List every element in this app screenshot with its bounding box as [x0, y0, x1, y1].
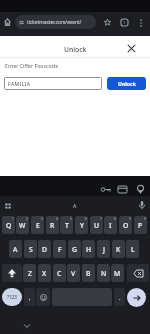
button[interactable] — [127, 288, 146, 307]
button[interactable]: S — [24, 240, 37, 258]
staticText: ?123 — [7, 294, 17, 300]
button[interactable] — [137, 185, 144, 194]
staticText: 8 — [114, 217, 116, 221]
button[interactable] — [104, 19, 111, 26]
staticText: K — [116, 245, 121, 254]
staticText: F — [58, 245, 62, 254]
button[interactable] — [23, 323, 31, 329]
button[interactable] — [2, 264, 22, 282]
staticText: 9 — [129, 217, 131, 221]
staticText: M — [114, 269, 121, 278]
staticText: T — [65, 221, 69, 230]
staticText: D — [42, 245, 47, 254]
staticText: . — [119, 294, 121, 301]
button[interactable]: W — [16, 216, 29, 234]
staticText: 4 — [56, 217, 58, 221]
staticText: A — [13, 245, 18, 254]
staticText: 6 — [85, 217, 87, 221]
button[interactable] — [139, 201, 145, 210]
button[interactable]: V — [67, 264, 80, 282]
button[interactable]: . — [114, 288, 125, 306]
button[interactable] — [127, 44, 136, 53]
button[interactable] — [4, 18, 11, 26]
button[interactable]: , — [24, 288, 35, 306]
button[interactable]: H — [82, 240, 95, 258]
staticText: J — [103, 245, 105, 254]
button[interactable] — [4, 202, 12, 210]
staticText: V — [71, 269, 76, 278]
staticText: Enter Offer Passcode — [5, 62, 59, 69]
staticText: P — [138, 221, 143, 230]
button[interactable] — [139, 19, 143, 27]
button[interactable]: C — [53, 264, 66, 282]
button[interactable]: E — [31, 216, 44, 234]
button[interactable]: X — [38, 264, 51, 282]
staticText: G — [72, 245, 77, 254]
staticText: B — [86, 269, 91, 278]
button[interactable]: T — [60, 216, 73, 234]
button[interactable]: Z — [23, 264, 36, 282]
staticText: 3 — [41, 217, 43, 221]
staticText: 7 — [100, 217, 102, 221]
button[interactable]: 1 — [121, 19, 128, 26]
staticText: N — [101, 269, 107, 278]
button[interactable]: ticketmaster.com/event/ — [15, 15, 96, 29]
staticText: H — [86, 245, 92, 254]
staticText: U — [94, 221, 100, 230]
staticText: Unlock — [118, 80, 136, 87]
staticText: O — [123, 221, 129, 230]
button[interactable]: ?123 — [2, 288, 22, 306]
staticText: R — [50, 221, 55, 230]
button[interactable]: F — [53, 240, 66, 258]
button[interactable]: J — [97, 240, 110, 258]
staticText: W — [19, 221, 26, 230]
button[interactable]: R — [46, 216, 59, 234]
staticText: I — [109, 221, 112, 230]
staticText: , — [29, 294, 31, 301]
staticText: Q — [6, 221, 12, 230]
button[interactable]: Q — [2, 216, 15, 234]
button[interactable] — [127, 264, 149, 282]
staticText: 2 — [26, 217, 28, 221]
button[interactable]: M — [111, 264, 124, 282]
button[interactable]: L — [126, 240, 139, 258]
button[interactable]: A — [9, 240, 22, 258]
button[interactable] — [101, 186, 111, 193]
staticText: X — [42, 269, 47, 278]
button[interactable]: K — [112, 240, 125, 258]
staticText: ticketmaster.com/event/ — [27, 19, 82, 26]
staticText: 1 — [12, 217, 14, 221]
button[interactable]: D — [38, 240, 51, 258]
staticText: C — [57, 269, 62, 278]
staticText: FAMILIA — [8, 80, 31, 87]
staticText: E — [36, 221, 40, 230]
staticText: Unlock — [64, 45, 87, 54]
staticText: 1 — [123, 20, 126, 25]
staticText: Y — [80, 221, 84, 230]
button[interactable] — [118, 186, 127, 193]
button[interactable]: B — [82, 264, 95, 282]
staticText: 0 — [144, 217, 146, 221]
staticText: S — [29, 245, 33, 254]
button[interactable]: Unlock — [107, 77, 146, 90]
staticText: L — [131, 245, 135, 254]
button[interactable]: O — [119, 216, 132, 234]
button[interactable]: U — [90, 216, 103, 234]
button[interactable]: FAMILIA — [4, 77, 102, 90]
button[interactable] — [36, 288, 50, 306]
button[interactable]: N — [97, 264, 110, 282]
staticText: A — [73, 202, 77, 209]
staticText: Z — [28, 269, 32, 278]
button[interactable]: P — [134, 216, 147, 234]
staticText: 5 — [70, 217, 72, 221]
button[interactable]: G — [68, 240, 81, 258]
button[interactable]: Y — [75, 216, 88, 234]
button[interactable]: I — [104, 216, 117, 234]
